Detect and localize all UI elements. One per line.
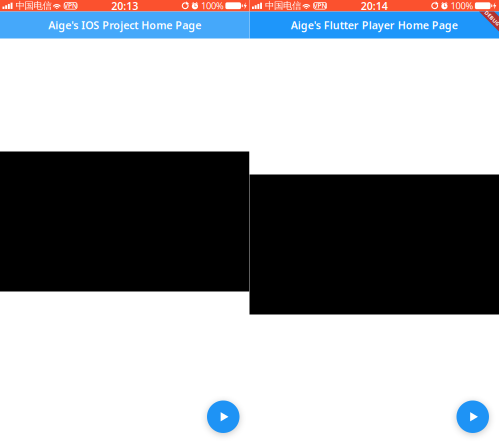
staticText: 中国电信 <box>265 0 301 11</box>
staticText: 100% <box>201 0 224 12</box>
staticText: 中国电信 <box>15 0 51 11</box>
staticText: Aige's Flutter Player Home Page <box>291 18 458 32</box>
staticText: DEBUG <box>483 15 499 22</box>
button[interactable]: Play <box>456 400 489 433</box>
staticText: 20:14 <box>361 0 388 13</box>
staticText: VPN <box>314 1 327 10</box>
staticText: Aige's IOS Project Home Page <box>48 18 201 32</box>
staticText: VPN <box>64 1 77 10</box>
button[interactable]: Play <box>207 400 239 433</box>
staticText: 20:13 <box>111 0 138 13</box>
staticText: 100% <box>450 0 473 12</box>
